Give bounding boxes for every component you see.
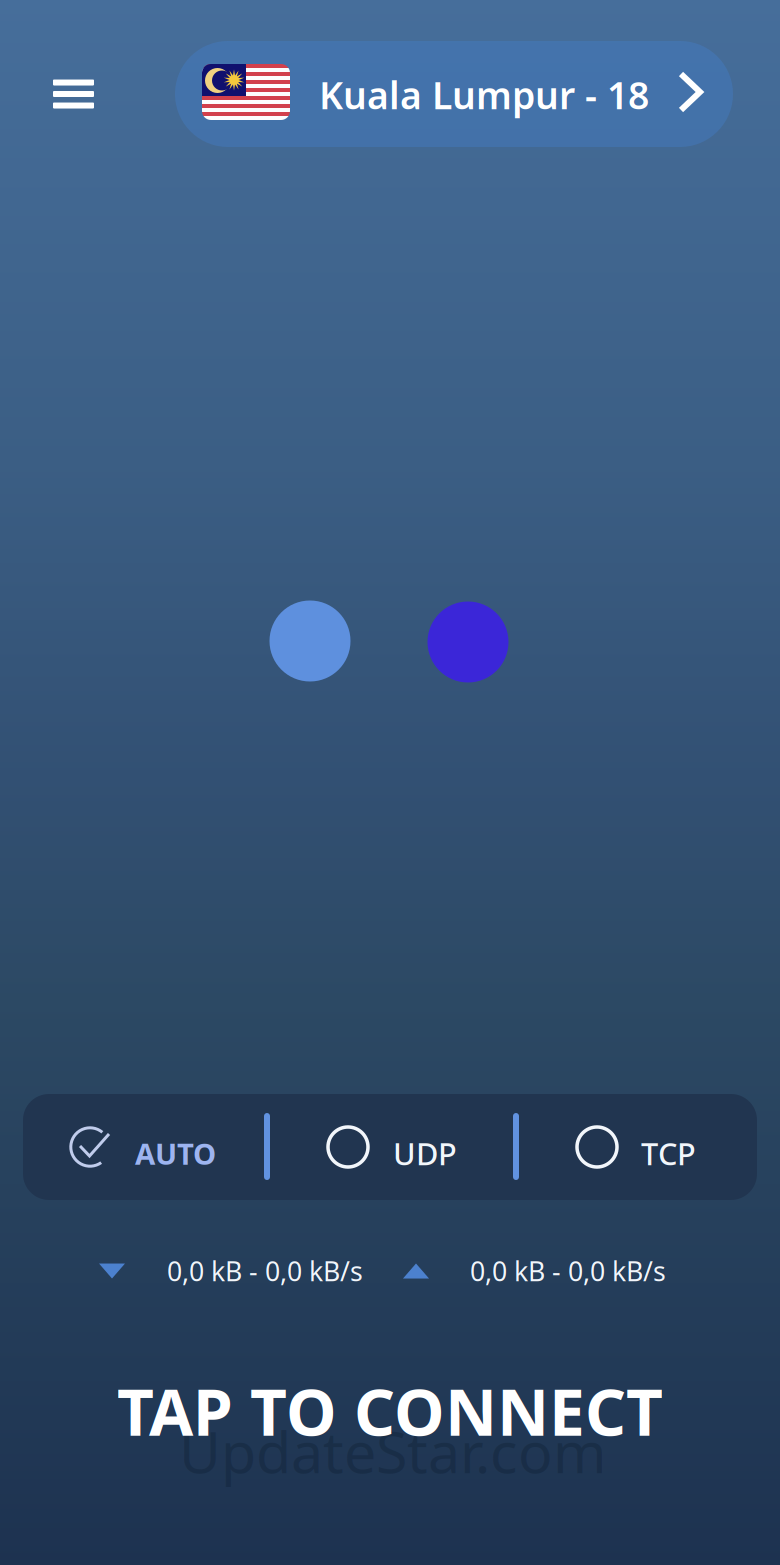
button[interactable]: UDP xyxy=(304,1094,551,1200)
button[interactable]: TCP xyxy=(553,1094,759,1200)
staticText: Kuala Lumpur - 18 xyxy=(319,70,649,120)
staticText: TAP TO CONNECT xyxy=(117,1368,663,1453)
staticText: TCP xyxy=(641,1133,696,1174)
staticText: UpdateStar.com xyxy=(179,1413,607,1489)
button[interactable]: TAP TO CONNECT xyxy=(40,1366,740,1456)
button[interactable]: Kuala Lumpur - 18 xyxy=(175,41,733,147)
staticText: AUTO xyxy=(135,1134,216,1173)
staticText: UDP xyxy=(393,1133,457,1174)
button[interactable]: Menu xyxy=(30,51,116,137)
button[interactable]: AUTO xyxy=(23,1094,304,1200)
staticText: 0,0 kB - 0,0 kB/s xyxy=(167,1253,363,1289)
staticText: 0,0 kB - 0,0 kB/s xyxy=(470,1253,666,1289)
